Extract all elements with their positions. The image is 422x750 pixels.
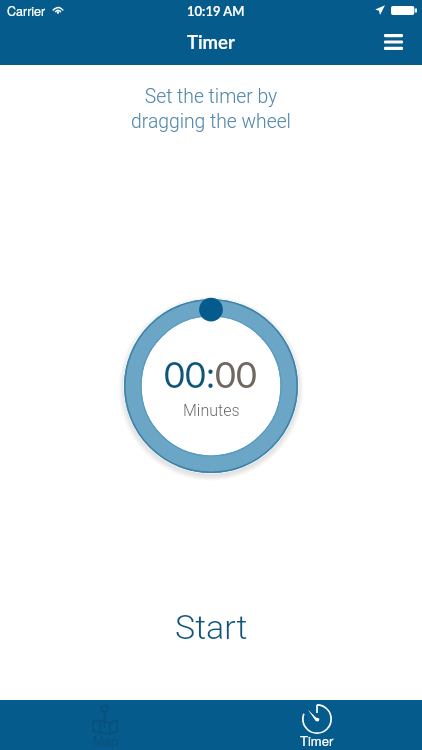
staticText: Map bbox=[93, 731, 119, 750]
staticText: 00:00 bbox=[164, 352, 258, 395]
button[interactable]: Timer bbox=[211, 700, 422, 750]
staticText: Set the timer by dragging the wheel bbox=[131, 85, 291, 133]
staticText: 10:19 AM bbox=[187, 3, 245, 19]
staticText: Carrier bbox=[7, 2, 46, 20]
staticText: Timer bbox=[300, 731, 334, 750]
button[interactable]: Start bbox=[149, 599, 274, 655]
button[interactable]: Menu bbox=[370, 20, 416, 64]
staticText: Minutes bbox=[183, 401, 240, 420]
staticText: Timer bbox=[187, 31, 235, 53]
staticText: Start bbox=[175, 607, 248, 647]
